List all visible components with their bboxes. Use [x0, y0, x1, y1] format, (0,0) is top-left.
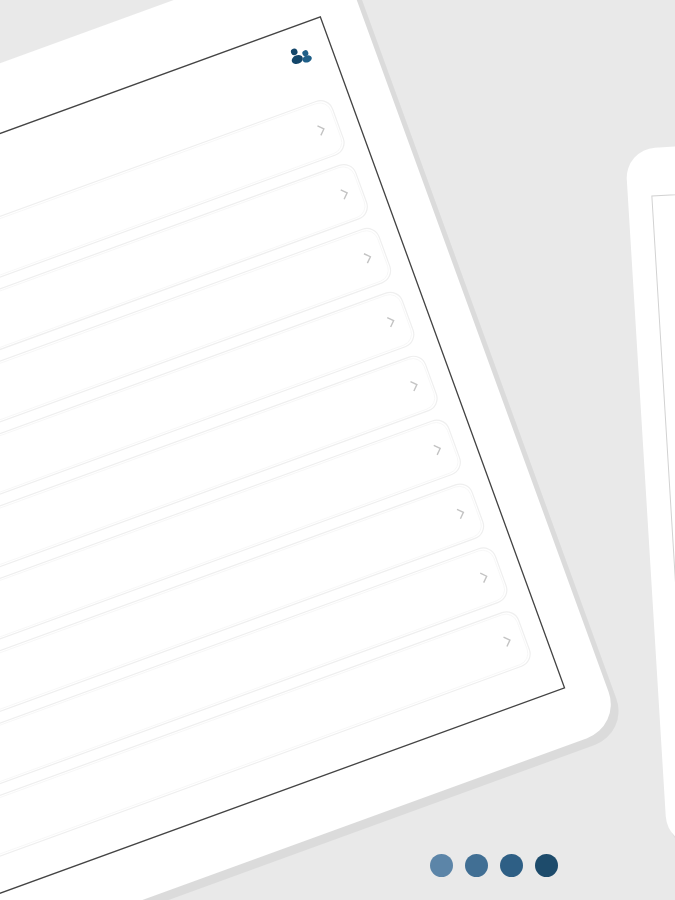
button[interactable]: Go to page 2: [465, 854, 488, 877]
button[interactable]: Go to page 4: [535, 854, 558, 877]
button[interactable]: Go to page 3: [500, 854, 523, 877]
button[interactable]: Go to page 1: [430, 854, 453, 877]
